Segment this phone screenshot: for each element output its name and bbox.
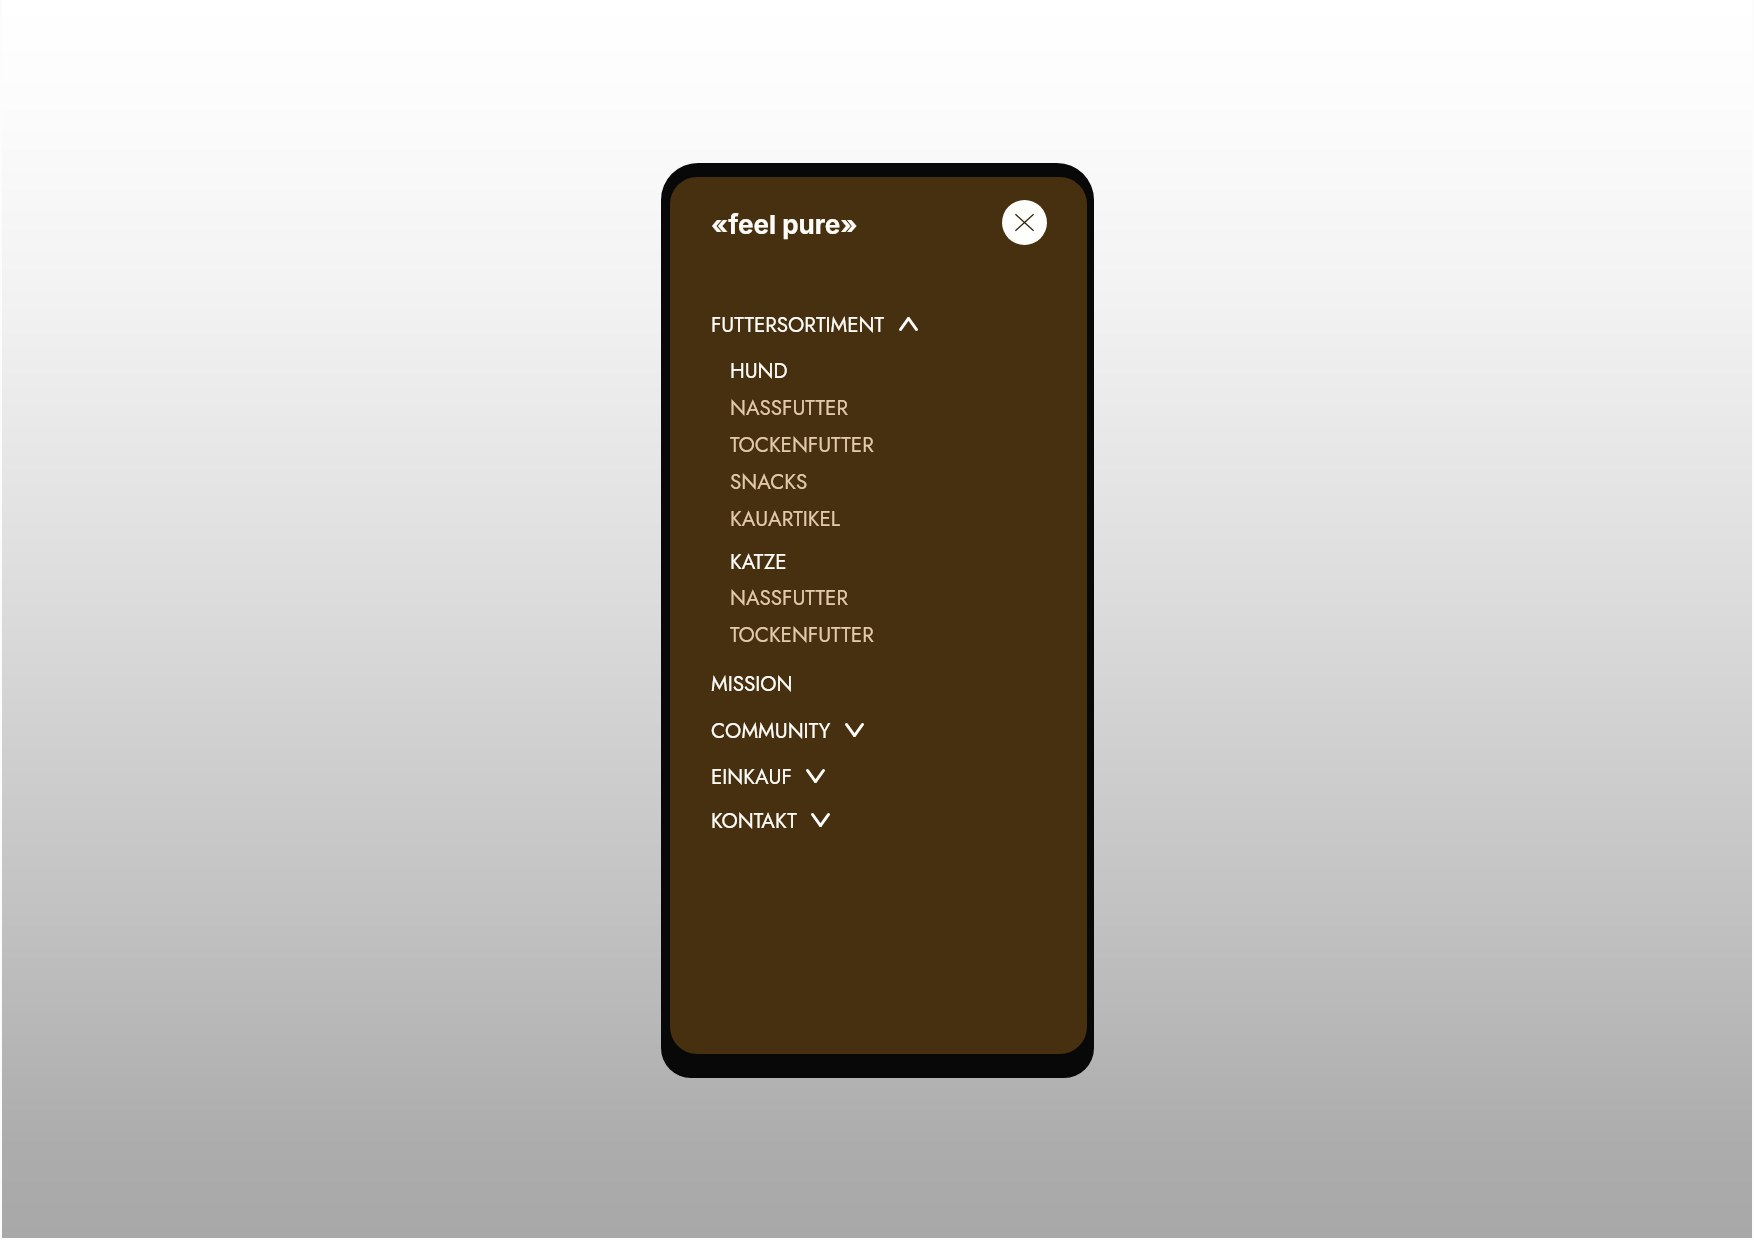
button[interactable]: KATZE [670,544,1087,580]
button[interactable]: HUND [670,353,1087,389]
staticText: FUTTERSORTIMENT [711,310,885,340]
button[interactable]: TOCKENFUTTER [670,617,1087,653]
button[interactable]: KAUARTIKEL [670,501,1087,537]
staticText: «feel pure» [711,209,858,240]
button[interactable]: Close menu [1002,200,1047,245]
button[interactable]: MISSION [670,666,1087,702]
staticText: KAUARTIKEL [730,504,841,534]
staticText: KATZE [730,547,787,577]
staticText: COMMUNITY [711,716,831,746]
button[interactable]: KONTAKT [670,803,1087,839]
staticText: NASSFUTTER [730,393,848,423]
button[interactable]: COMMUNITY [670,713,1087,749]
staticText: KONTAKT [711,806,797,836]
staticText: TOCKENFUTTER [730,620,874,650]
button[interactable]: TOCKENFUTTER [670,427,1087,463]
button[interactable]: FUTTERSORTIMENT [670,307,1087,343]
button[interactable]: SNACKS [670,464,1087,500]
staticText: MISSION [711,669,793,699]
button[interactable]: EINKAUF [670,759,1087,795]
staticText: SNACKS [730,467,808,497]
staticText: NASSFUTTER [730,583,848,613]
staticText: TOCKENFUTTER [730,430,874,460]
staticText: EINKAUF [711,762,792,792]
button[interactable]: «feel pure» [711,204,858,244]
button[interactable]: NASSFUTTER [670,390,1087,426]
button[interactable]: NASSFUTTER [670,580,1087,616]
staticText: HUND [730,356,788,386]
